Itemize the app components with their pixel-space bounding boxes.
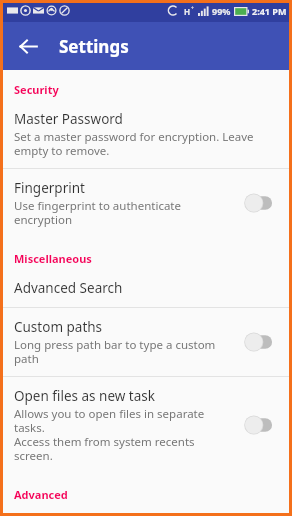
button[interactable]: Advanced Search — [0, 269, 292, 307]
staticText: + — [191, 5, 194, 12]
button[interactable]: Toggle — [244, 192, 280, 214]
button[interactable]: Toggle — [244, 414, 280, 436]
staticText: Master Password — [14, 110, 123, 128]
staticText: Advanced Search — [14, 279, 123, 297]
staticText: Open files as new task — [14, 387, 155, 405]
staticText: Use fingerprint to authenticate encrypti… — [14, 198, 236, 227]
staticText: 2:41 PM — [252, 5, 287, 17]
button[interactable]: Custom paths — [0, 308, 292, 376]
staticText: Security — [14, 82, 292, 97]
staticText: 99% — [212, 5, 231, 17]
staticText: Miscellaneous — [14, 251, 292, 266]
button[interactable]: Fingerprint — [0, 169, 292, 237]
staticText: Allows you to open files in separate tas… — [14, 406, 236, 463]
button[interactable]: Toggle — [244, 331, 280, 353]
staticText: Long press path bar to type a custom pat… — [14, 337, 236, 366]
staticText: H — [184, 6, 191, 17]
staticText: Custom paths — [14, 318, 103, 336]
staticText: Settings — [59, 35, 129, 58]
staticText: Set a master password for encryption. Le… — [14, 129, 280, 158]
button[interactable]: Open files as new task — [0, 377, 292, 473]
staticText: Fingerprint — [14, 179, 85, 197]
button[interactable]: Back — [10, 28, 46, 64]
staticText: Advanced — [14, 487, 292, 502]
button[interactable]: Show Permissions — [0, 505, 292, 516]
button[interactable]: Master Password — [0, 100, 292, 168]
